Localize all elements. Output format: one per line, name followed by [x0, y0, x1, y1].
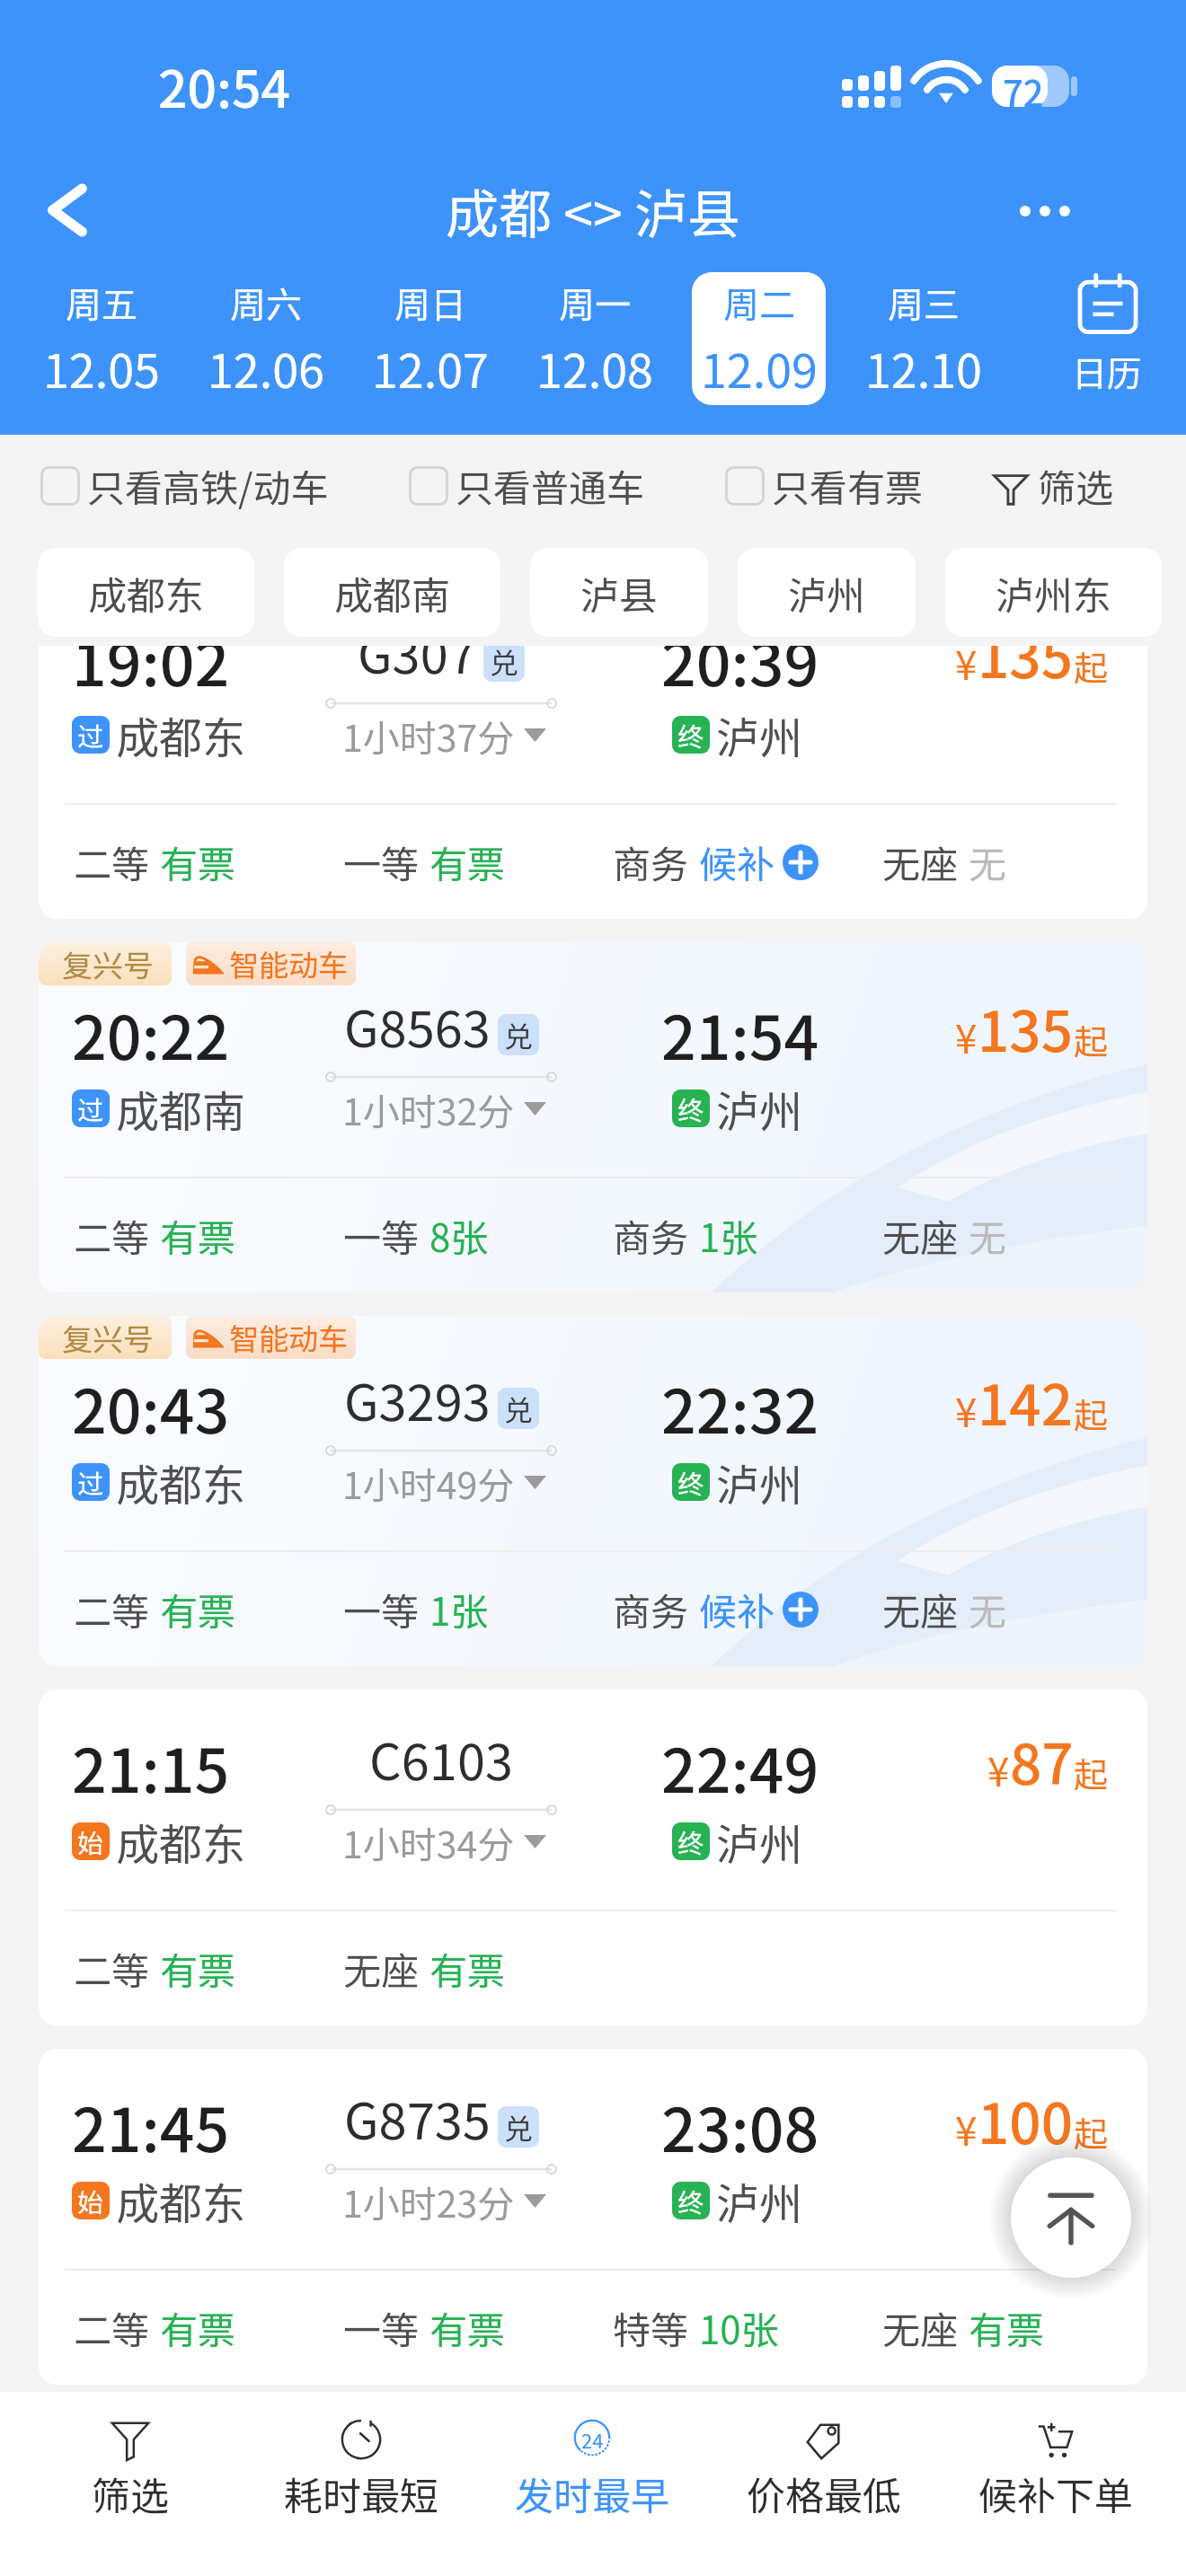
staticText: 成都 <> 泸县 — [446, 172, 740, 249]
staticText: 泸州 — [716, 1810, 803, 1873]
staticText: 1小时49分 — [342, 1456, 515, 1509]
staticText: G307 — [358, 646, 476, 688]
staticText: 一等 — [343, 1582, 420, 1636]
staticText: 二等 — [74, 1208, 150, 1263]
staticText: 21:54 — [661, 989, 819, 1077]
staticText: 成都南 — [334, 565, 450, 621]
staticText: 1小时37分 — [342, 709, 515, 762]
button[interactable]: 泸州 — [738, 548, 916, 637]
staticText: 周三 — [888, 277, 960, 329]
staticText: 19:02 — [72, 646, 230, 703]
staticText: 泸州东 — [996, 565, 1111, 621]
staticText: 135 — [978, 987, 1074, 1068]
staticText: 21:15 — [72, 1722, 230, 1810]
button[interactable]: 只看高铁/动车 — [40, 458, 329, 513]
button[interactable]: 周三 — [841, 270, 1005, 407]
staticText: 成都南 — [116, 1077, 246, 1140]
button[interactable]: 19:02 — [39, 646, 1147, 919]
staticText: 1小时32分 — [342, 1082, 515, 1135]
staticText: 兑 — [504, 2106, 534, 2148]
staticText: 过 — [77, 1463, 104, 1501]
staticText: 价格最低 — [747, 2466, 901, 2521]
staticText: 终 — [677, 716, 704, 754]
staticText: 起 — [1074, 1748, 1109, 1797]
button[interactable]: 24 — [476, 2392, 708, 2576]
staticText: 智能动车 — [229, 1316, 348, 1359]
button[interactable]: 周六 — [183, 270, 348, 407]
staticText: 泸州 — [716, 2169, 803, 2232]
staticText: 日历 — [1072, 346, 1143, 396]
staticText: 周五 — [66, 277, 137, 329]
button[interactable]: 周日 — [348, 270, 512, 407]
staticText: 起 — [1074, 1015, 1109, 1064]
button[interactable]: Back to top — [1011, 2157, 1131, 2278]
staticText: ¥ — [987, 1741, 1010, 1798]
staticText: 起 — [1074, 2107, 1109, 2157]
staticText: 筛选 — [1038, 458, 1114, 513]
staticText: 100 — [978, 2079, 1074, 2160]
button[interactable]: 成都南 — [284, 548, 500, 637]
staticText: G8563 — [344, 989, 491, 1062]
button[interactable]: 21:15 — [39, 1689, 1147, 2025]
staticText: 只看普通车 — [456, 458, 645, 513]
staticText: 兑 — [504, 1014, 534, 1055]
staticText: 二等 — [74, 2300, 150, 2355]
staticText: ¥ — [955, 2100, 978, 2157]
staticText: 20:39 — [661, 646, 819, 703]
button[interactable]: 日历 — [1024, 267, 1186, 403]
button[interactable]: 21:45 — [39, 2049, 1147, 2385]
staticText: 终 — [677, 1463, 704, 1501]
button[interactable]: 候补下单 — [940, 2392, 1172, 2576]
staticText: 有票 — [160, 1941, 236, 1996]
staticText: 8张 — [429, 1208, 489, 1263]
button[interactable]: 只看普通车 — [409, 458, 645, 513]
staticText: 20:43 — [72, 1363, 230, 1451]
button[interactable]: 只看有票 — [725, 458, 924, 513]
staticText: 起 — [1074, 1389, 1109, 1438]
staticText: 72 — [1003, 66, 1044, 118]
staticText: 成都东 — [116, 1810, 246, 1873]
staticText: 成都东 — [116, 1451, 246, 1513]
staticText: 周六 — [230, 277, 302, 329]
staticText: 复兴号 — [62, 1316, 154, 1359]
staticText: 特等 — [613, 2300, 689, 2355]
staticText: 成都东 — [116, 703, 246, 766]
button[interactable]: 价格最低 — [708, 2392, 940, 2576]
button[interactable]: 周一 — [512, 270, 677, 407]
staticText: 无 — [969, 1582, 1007, 1636]
button[interactable]: 复兴号 — [39, 1316, 1147, 1666]
button[interactable]: 周二 — [677, 270, 841, 407]
staticText: 1张 — [699, 1208, 758, 1263]
staticText: 复兴号 — [62, 942, 154, 985]
button[interactable]: 复兴号 — [39, 942, 1147, 1292]
button[interactable]: 泸州东 — [945, 548, 1162, 637]
staticText: 22:49 — [661, 1722, 819, 1810]
staticText: 有票 — [429, 834, 506, 889]
button[interactable]: 成都东 — [38, 548, 254, 637]
staticText: ¥ — [955, 646, 978, 692]
staticText: 成都东 — [116, 2169, 246, 2232]
staticText: 12.09 — [701, 334, 818, 401]
button[interactable]: 周五 — [19, 270, 183, 407]
button[interactable]: 泸县 — [530, 548, 708, 637]
staticText: C6103 — [369, 1722, 514, 1795]
staticText: 有票 — [160, 1208, 236, 1263]
staticText: 无座 — [882, 1208, 959, 1263]
button[interactable]: 筛选 — [991, 458, 1186, 513]
staticText: 始 — [77, 1822, 104, 1860]
button[interactable]: More options — [1000, 164, 1090, 258]
staticText: 二等 — [74, 834, 150, 889]
button[interactable]: Back — [12, 163, 123, 257]
staticText: 只看有票 — [772, 458, 924, 513]
staticText: 商务 — [613, 834, 689, 889]
staticText: 始 — [77, 2182, 104, 2219]
staticText: 1小时23分 — [342, 2175, 515, 2228]
staticText: 无座 — [343, 1941, 420, 1996]
staticText: 终 — [677, 2182, 704, 2219]
button[interactable]: 耗时最短 — [245, 2392, 476, 2576]
staticText: G3293 — [344, 1363, 491, 1435]
button[interactable]: 筛选 — [14, 2392, 245, 2576]
staticText: 终 — [677, 1090, 704, 1127]
staticText: 22:32 — [661, 1363, 819, 1451]
staticText: ¥ — [955, 1381, 978, 1439]
